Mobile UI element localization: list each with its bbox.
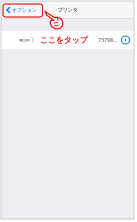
staticText: RICOH [18, 37, 29, 43]
staticText: 73798… [98, 36, 117, 44]
button[interactable]: RICOH [1, 31, 134, 49]
staticText: プリンタ [57, 7, 77, 13]
button[interactable]: オプション [4, 3, 39, 17]
staticText: オプション [12, 7, 37, 13]
staticText: ここをタップ [40, 35, 88, 45]
